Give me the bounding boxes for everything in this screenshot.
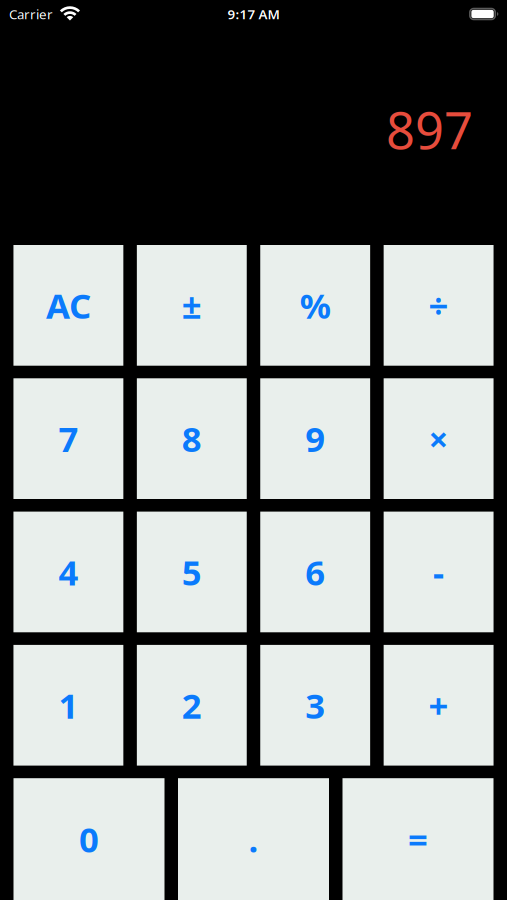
button[interactable]: 3 — [260, 645, 370, 766]
staticText: 5 — [182, 549, 202, 595]
staticText: 897 — [386, 96, 473, 163]
button[interactable]: 0 — [13, 778, 164, 900]
staticText: ÷ — [429, 282, 449, 328]
staticText: 9:17 AM — [227, 5, 279, 23]
staticText: 6 — [305, 549, 325, 595]
button[interactable]: 4 — [13, 512, 123, 632]
staticText: Carrier — [9, 5, 53, 23]
button[interactable]: 6 — [260, 512, 370, 632]
staticText: . — [248, 816, 258, 862]
button[interactable]: 1 — [13, 645, 123, 766]
staticText: - — [433, 549, 444, 595]
staticText: 7 — [58, 416, 78, 462]
button[interactable]: 2 — [137, 645, 247, 766]
button[interactable]: × — [384, 378, 494, 499]
button[interactable]: - — [384, 512, 494, 632]
button[interactable]: . — [178, 778, 329, 900]
staticText: + — [429, 682, 449, 728]
button[interactable]: ÷ — [384, 245, 494, 366]
staticText: 0 — [79, 816, 99, 862]
button[interactable]: 5 — [137, 512, 247, 632]
staticText: % — [300, 282, 331, 328]
staticText: AC — [46, 282, 91, 328]
staticText: × — [429, 416, 449, 462]
staticText: 2 — [182, 682, 202, 728]
staticText: ± — [182, 282, 202, 328]
button[interactable]: AC — [13, 245, 123, 366]
button[interactable]: + — [384, 645, 494, 766]
staticText: 4 — [58, 549, 78, 595]
staticText: 3 — [305, 682, 325, 728]
button[interactable]: % — [260, 245, 370, 366]
button[interactable]: = — [342, 778, 493, 900]
staticText: 8 — [182, 416, 202, 462]
staticText: 1 — [58, 682, 78, 728]
staticText: = — [408, 816, 428, 862]
button[interactable]: 7 — [13, 378, 123, 499]
button[interactable]: 9 — [260, 378, 370, 499]
staticText: 9 — [305, 416, 325, 462]
button[interactable]: 8 — [137, 378, 247, 499]
button[interactable]: ± — [137, 245, 247, 366]
